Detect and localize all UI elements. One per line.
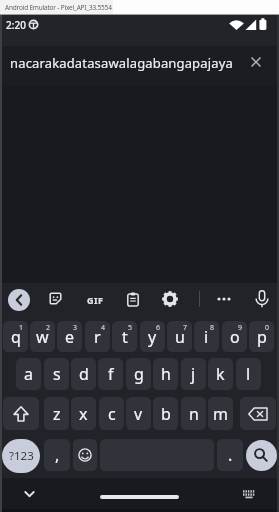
- button[interactable]: z: [44, 397, 69, 430]
- staticText: i: [204, 326, 209, 348]
- staticText: l: [246, 363, 251, 385]
- staticText: 2: [46, 323, 51, 333]
- button[interactable]: [100, 495, 179, 499]
- button[interactable]: b: [153, 397, 178, 430]
- staticText: 1: [19, 323, 24, 333]
- button[interactable]: n: [181, 397, 206, 430]
- staticText: t: [122, 326, 128, 348]
- button[interactable]: [213, 290, 235, 308]
- button[interactable]: g: [126, 358, 151, 390]
- staticText: e: [65, 326, 75, 348]
- staticText: q: [11, 326, 21, 348]
- staticText: z: [53, 403, 61, 425]
- button[interactable]: f: [98, 358, 123, 390]
- staticText: GIF: [87, 294, 104, 306]
- button[interactable]: c: [99, 397, 124, 430]
- staticText: d: [79, 363, 89, 385]
- staticText: r: [94, 326, 101, 348]
- staticText: 9: [238, 323, 243, 333]
- button[interactable]: m: [208, 397, 233, 430]
- staticText: y: [148, 326, 157, 348]
- button[interactable]: [47, 290, 65, 308]
- button[interactable]: w: [30, 321, 55, 352]
- staticText: ?123: [9, 448, 34, 464]
- button[interactable]: h: [153, 358, 178, 390]
- staticText: 3: [73, 323, 78, 333]
- button[interactable]: d: [71, 358, 96, 390]
- staticText: ,: [55, 444, 60, 466]
- staticText: nacarakadatasawalagabangapajaya: [10, 54, 233, 72]
- button[interactable]: [73, 439, 97, 471]
- staticText: o: [230, 326, 240, 348]
- button[interactable]: [240, 397, 276, 430]
- button[interactable]: [245, 51, 267, 73]
- staticText: 5: [128, 323, 133, 333]
- staticText: u: [175, 326, 185, 348]
- staticText: p: [257, 326, 267, 348]
- staticText: 6: [156, 323, 161, 333]
- button[interactable]: ,: [44, 439, 70, 471]
- staticText: 4: [101, 323, 106, 333]
- button[interactable]: j: [181, 358, 206, 390]
- staticText: 8: [210, 323, 215, 333]
- button[interactable]: p: [249, 321, 274, 352]
- button[interactable]: [0, 46, 279, 86]
- staticText: c: [108, 403, 116, 425]
- staticText: s: [53, 363, 61, 385]
- button[interactable]: v: [126, 397, 151, 430]
- button[interactable]: [8, 289, 30, 311]
- button[interactable]: k: [208, 358, 233, 390]
- button[interactable]: [253, 289, 271, 309]
- button[interactable]: u: [167, 321, 192, 352]
- button[interactable]: [240, 487, 258, 501]
- button[interactable]: l: [236, 358, 261, 390]
- button[interactable]: [246, 440, 277, 471]
- staticText: 2:20: [6, 18, 26, 32]
- button[interactable]: e: [57, 321, 82, 352]
- staticText: f: [108, 363, 114, 385]
- staticText: g: [134, 363, 144, 385]
- button[interactable]: q: [3, 321, 28, 352]
- button[interactable]: r: [85, 321, 110, 352]
- staticText: n: [189, 403, 199, 425]
- staticText: Android Emulator - Pixel_API_33.5554: [5, 3, 112, 12]
- button[interactable]: [161, 290, 179, 308]
- staticText: 7: [183, 323, 188, 333]
- staticText: b: [161, 403, 171, 425]
- staticText: 0: [265, 323, 270, 333]
- staticText: h: [161, 363, 171, 385]
- button[interactable]: [3, 397, 39, 430]
- staticText: .: [228, 444, 233, 466]
- staticText: v: [134, 403, 143, 425]
- button[interactable]: [21, 486, 38, 502]
- staticText: w: [36, 326, 49, 348]
- button[interactable]: .: [217, 439, 243, 471]
- button[interactable]: y: [140, 321, 165, 352]
- staticText: a: [24, 363, 33, 385]
- button[interactable]: s: [44, 358, 69, 390]
- staticText: j: [191, 363, 196, 385]
- button[interactable]: i: [194, 321, 219, 352]
- staticText: k: [216, 363, 225, 385]
- staticText: x: [79, 403, 88, 425]
- button[interactable]: t: [112, 321, 137, 352]
- button[interactable]: o: [222, 321, 247, 352]
- button[interactable]: [124, 290, 142, 308]
- button[interactable]: x: [71, 397, 96, 430]
- button[interactable]: ?123: [2, 439, 40, 473]
- button[interactable]: a: [16, 358, 41, 390]
- staticText: m: [213, 403, 228, 425]
- button[interactable]: GIF: [84, 292, 106, 307]
